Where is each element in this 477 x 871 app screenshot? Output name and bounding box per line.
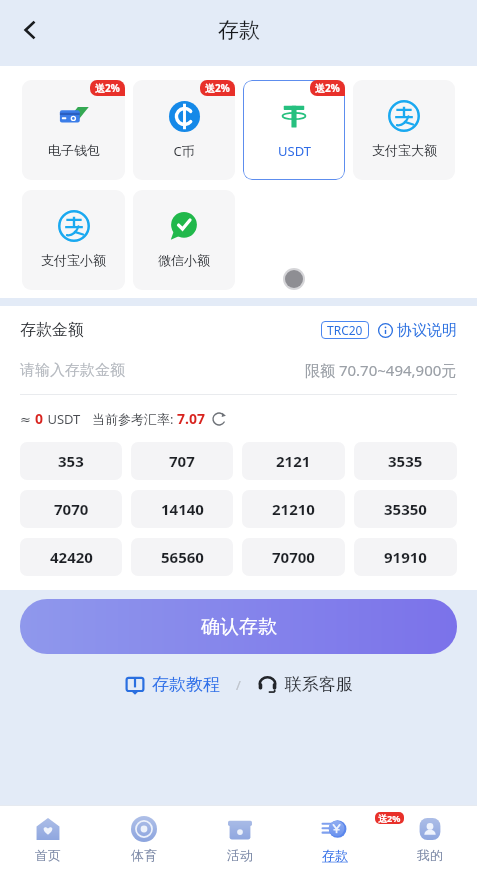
button[interactable]: 3535 — [354, 442, 457, 480]
staticText: 活动 — [227, 847, 253, 863]
button[interactable]: 体育 — [96, 805, 192, 871]
staticText: 存款 — [322, 847, 348, 863]
button[interactable]: 支付宝小额 — [22, 190, 125, 290]
staticText: 电子钱包 — [48, 142, 100, 158]
button[interactable]: 35350 — [354, 490, 457, 528]
staticText: USDT — [278, 142, 311, 160]
staticText: 支付宝小额 — [41, 252, 106, 268]
staticText: 送2% — [315, 81, 340, 95]
staticText: 14140 — [161, 499, 204, 519]
staticText: 353 — [58, 451, 84, 471]
staticText: 存款金额 — [20, 320, 84, 340]
button[interactable]: 请输入存款金额 — [20, 360, 457, 380]
staticText: 42420 — [50, 547, 93, 567]
button[interactable]: 首页 — [0, 805, 96, 871]
button[interactable]: 353 — [20, 442, 122, 480]
staticText: 3535 — [388, 451, 423, 471]
button[interactable]: 存款教程 — [125, 674, 220, 695]
staticText: 微信小额 — [158, 252, 210, 268]
staticText: 当前参考汇率: — [92, 410, 177, 428]
staticText: 首页 — [35, 847, 61, 863]
staticText: 91910 — [384, 547, 427, 567]
button[interactable]: 707 — [131, 442, 233, 480]
staticText: 请输入存款金额 — [20, 361, 125, 380]
staticText: ≈ — [20, 410, 35, 428]
button[interactable]: 91910 — [354, 538, 457, 576]
staticText: 35350 — [384, 499, 427, 519]
staticText: TRC20 — [327, 322, 363, 338]
button[interactable]: 56560 — [131, 538, 233, 576]
button[interactable]: 70700 — [242, 538, 345, 576]
button[interactable]: C币 — [133, 80, 235, 180]
staticText: 限额 70.70~494,900元 — [305, 360, 457, 380]
button[interactable]: Refresh rate — [211, 411, 227, 427]
staticText: 21210 — [272, 499, 315, 519]
button[interactable]: 7070 — [20, 490, 122, 528]
staticText: 体育 — [131, 847, 157, 863]
button[interactable]: 确认存款 — [20, 599, 457, 654]
staticText: 存款 — [218, 17, 260, 43]
button[interactable]: 协议说明 — [378, 321, 457, 340]
staticText: 7070 — [54, 499, 89, 519]
button[interactable]: USDT — [243, 80, 345, 180]
staticText: 70700 — [272, 547, 315, 567]
button[interactable]: 送2% — [287, 805, 382, 871]
staticText: 我的 — [417, 847, 443, 863]
button[interactable]: Back — [8, 8, 52, 52]
button[interactable]: 联系客服 — [257, 674, 353, 695]
staticText: 送2% — [205, 81, 230, 95]
staticText: 0 — [35, 409, 44, 428]
staticText: 送2% — [378, 812, 401, 824]
staticText: 支付宝大额 — [372, 142, 437, 158]
staticText: / — [236, 676, 241, 694]
staticText: 协议说明 — [397, 321, 457, 340]
staticText: 56560 — [161, 547, 204, 567]
button[interactable]: 活动 — [192, 805, 287, 871]
staticText: C币 — [173, 142, 195, 160]
button[interactable]: 21210 — [242, 490, 345, 528]
staticText: 存款教程 — [152, 674, 220, 695]
staticText: 联系客服 — [285, 674, 353, 695]
staticText: 707 — [169, 451, 195, 471]
button[interactable]: 2121 — [242, 442, 345, 480]
staticText: 7.07 — [177, 409, 205, 428]
staticText: 2121 — [276, 451, 311, 471]
button[interactable]: 电子钱包 — [22, 80, 125, 180]
staticText: 确认存款 — [201, 615, 277, 639]
button[interactable]: 我的 — [382, 805, 477, 871]
button[interactable]: 42420 — [20, 538, 122, 576]
staticText: 送2% — [95, 81, 120, 95]
button[interactable]: 微信小额 — [133, 190, 235, 290]
button[interactable]: 14140 — [131, 490, 233, 528]
staticText: USDT — [44, 410, 81, 428]
button[interactable]: TRC20 — [327, 322, 363, 338]
button[interactable]: 支付宝大额 — [353, 80, 455, 180]
